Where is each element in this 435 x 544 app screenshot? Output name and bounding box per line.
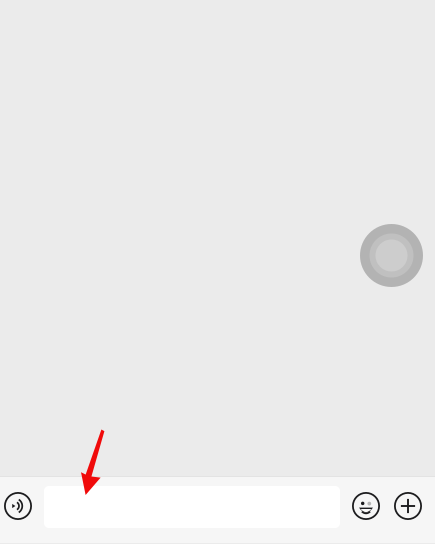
button[interactable]: Message [44,486,340,528]
button[interactable]: More [390,481,426,531]
button[interactable]: Emoji [342,481,390,531]
button[interactable]: Hold to talk [0,481,36,531]
